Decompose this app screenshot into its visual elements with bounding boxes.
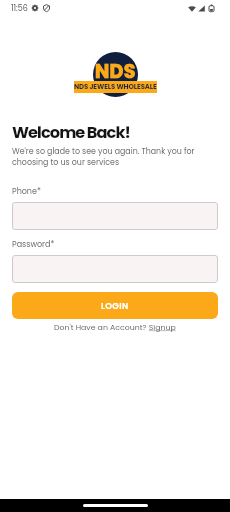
staticText: LOGIN xyxy=(101,300,129,312)
staticText: Password* xyxy=(12,239,55,250)
staticText: Welcome Back! xyxy=(12,121,130,144)
staticText: We're so glade to see you again. Thank y… xyxy=(12,146,218,168)
button[interactable]: Don't Have an Account? Signup xyxy=(54,322,176,333)
staticText: 11:56 xyxy=(11,3,28,14)
staticText: Phone* xyxy=(12,186,41,197)
staticText: NDS xyxy=(95,58,136,85)
other: Privacy xyxy=(43,4,50,12)
button[interactable]: LOGIN xyxy=(12,292,218,319)
button[interactable] xyxy=(12,202,218,230)
button[interactable] xyxy=(12,255,218,283)
staticText: NDS JEWELS WHOLESALE xyxy=(74,82,157,92)
